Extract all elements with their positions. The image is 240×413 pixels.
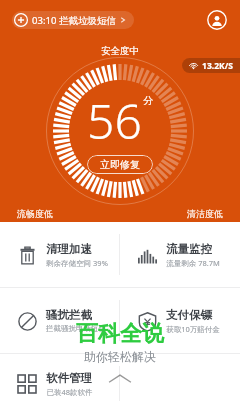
button[interactable]: 03:10 拦截垃圾短信	[12, 11, 134, 29]
staticText: 流量剩余 78.7M	[166, 258, 220, 268]
staticText: 助你轻松解决	[84, 349, 156, 364]
button[interactable]: 软件管理	[0, 354, 119, 413]
button[interactable]: 立即修复	[87, 155, 153, 174]
staticText: 骚扰拦截	[46, 308, 92, 322]
staticText: 安全度中	[101, 45, 139, 57]
staticText: 13.2K/S	[202, 60, 233, 72]
staticText: 已装48款软件	[46, 387, 93, 397]
staticText: 百科全说	[76, 320, 164, 348]
button[interactable]: 清理加速	[0, 222, 119, 287]
staticText: 拦截骚扰电话短信	[46, 324, 106, 333]
staticText: 软件管理	[46, 371, 92, 385]
button[interactable]: 13.2K/S	[182, 58, 240, 73]
button[interactable]: 骚扰拦截	[0, 288, 119, 353]
button[interactable]: 流量监控	[120, 222, 240, 287]
staticText: 剩余存储空间 39%	[46, 258, 108, 268]
staticText: 分	[143, 94, 153, 107]
staticText: 03:10 拦截垃圾短信	[32, 14, 116, 27]
staticText: 流畅度低	[17, 208, 53, 219]
staticText: 获取10万赔付金	[166, 324, 220, 334]
button[interactable]: Profile	[204, 7, 230, 33]
staticText: 清洁度低	[187, 208, 223, 219]
staticText: 支付保镖	[166, 308, 212, 322]
staticText: 立即修复	[100, 158, 140, 171]
staticText: 清理加速	[46, 242, 92, 256]
button[interactable]: 支付保镖	[120, 288, 240, 353]
staticText: 流量监控	[166, 242, 212, 256]
staticText: 56	[87, 88, 142, 153]
